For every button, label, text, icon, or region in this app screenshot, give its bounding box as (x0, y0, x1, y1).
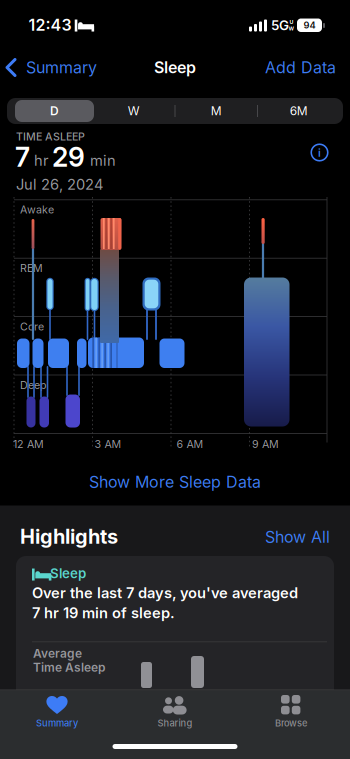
staticText: Show All (265, 528, 330, 546)
staticText: i (318, 146, 321, 159)
button[interactable]: Summary (2, 690, 112, 740)
staticText: 7 hr 19 min of sleep. (32, 604, 175, 622)
staticText: Sleep (50, 566, 86, 581)
button[interactable]: Show All (230, 522, 330, 552)
staticText: TIME ASLEEP (16, 130, 85, 143)
staticText: Time Asleep (33, 660, 105, 675)
staticText: Deep (20, 379, 47, 391)
button[interactable]: Add Data (236, 47, 336, 87)
staticText: Add Data (265, 58, 336, 77)
staticText: W (288, 25, 294, 32)
staticText: min (90, 152, 116, 169)
staticText: 6 AM (176, 438, 203, 450)
staticText: Over the last 7 days, you've averaged (32, 584, 298, 602)
staticText: Highlights (20, 525, 118, 548)
button[interactable]: M (175, 98, 257, 124)
button[interactable]: Show More Sleep Data (55, 465, 295, 499)
staticText: 6M (290, 104, 308, 118)
staticText: Jul 26, 2024 (16, 176, 103, 193)
staticText: hr (34, 152, 49, 169)
button[interactable]: D (10, 98, 92, 124)
staticText: U (289, 19, 293, 25)
staticText: 29 (52, 141, 85, 173)
button[interactable]: Browse (236, 690, 346, 740)
button[interactable]: W (92, 98, 175, 124)
staticText: 12 AM (13, 438, 44, 450)
staticText: M (211, 104, 222, 118)
staticText: Summary (36, 717, 78, 728)
staticText: Sleep (154, 58, 196, 77)
staticText: 7 (15, 141, 30, 173)
staticText: Core (20, 320, 44, 333)
staticText: Average (33, 646, 82, 661)
button[interactable]: i (304, 137, 334, 167)
button[interactable]: Sharing (120, 690, 230, 740)
staticText: Summary (26, 58, 97, 77)
staticText: W (128, 104, 140, 118)
staticText: 12:43 (28, 16, 71, 34)
staticText: Browse (275, 717, 307, 728)
staticText: 5G (271, 18, 289, 33)
staticText: 3 AM (94, 438, 121, 450)
button[interactable]: 6M (257, 98, 340, 124)
button[interactable]: Summary (0, 47, 126, 87)
staticText: 94 (303, 20, 315, 31)
staticText: 9 AM (252, 438, 279, 450)
staticText: Sharing (157, 717, 192, 728)
staticText: Awake (20, 203, 54, 216)
staticText: REM (20, 262, 43, 274)
staticText: Show More Sleep Data (89, 473, 261, 491)
staticText: D (50, 104, 59, 118)
button[interactable]: Sleep (16, 556, 334, 740)
